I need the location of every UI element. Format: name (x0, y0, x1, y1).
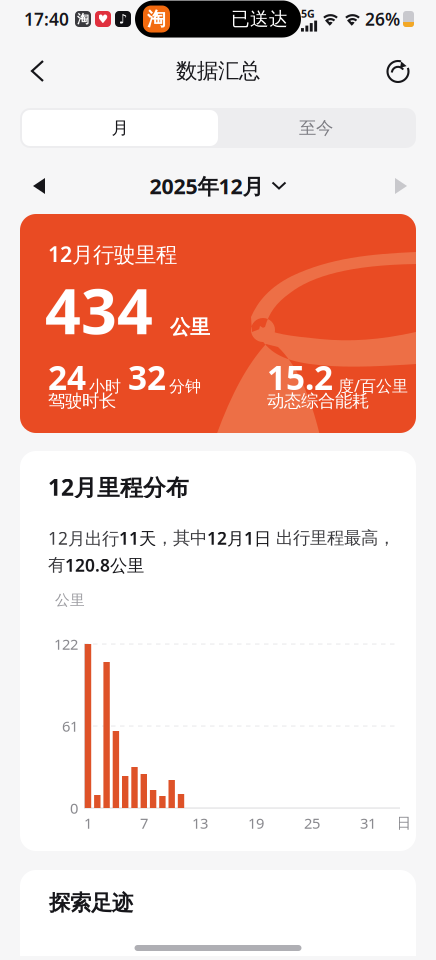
staticText: 24 (48, 355, 86, 399)
staticText: 月 (111, 117, 128, 139)
staticText: 出行里程最高， (271, 527, 395, 549)
button[interactable]: Back (0, 60, 45, 82)
staticText: 0 (70, 798, 78, 818)
staticText: 26% (365, 7, 400, 30)
staticText: 至今 (299, 117, 333, 139)
staticText: 122 (54, 634, 78, 654)
staticText: 动态综合能耗 (267, 390, 369, 412)
staticText: ，其中 (156, 527, 207, 549)
staticText: 淘 (147, 7, 166, 30)
button[interactable]: 月 (22, 110, 218, 146)
staticText: 已送达 (231, 7, 288, 30)
staticText: 11天 (119, 526, 156, 549)
staticText: 数据汇总 (176, 58, 260, 84)
staticText: 日 (396, 814, 411, 832)
staticText: 15.2 (267, 355, 333, 399)
staticText: 25 (304, 813, 320, 833)
staticText: 17:40 (24, 7, 69, 30)
staticText: 度/百公里 (338, 375, 408, 396)
staticText: 32 (128, 355, 166, 399)
staticText: 12月出行 (48, 526, 119, 549)
staticText: ♪ (118, 11, 127, 26)
staticText: 1 (84, 813, 92, 833)
staticText: 12月里程分布 (48, 472, 189, 502)
staticText: 2025年12月 (149, 172, 263, 200)
staticText: 有 (48, 554, 65, 576)
staticText: 驾驶时长 (48, 390, 116, 412)
staticText: 12月1日 (207, 526, 271, 549)
staticText: 公里 (55, 591, 85, 609)
staticText: 120.8公里 (65, 553, 144, 576)
button[interactable]: Refresh (386, 57, 436, 84)
staticText: 13 (192, 813, 208, 833)
staticText: 434 (45, 268, 153, 352)
staticText: 61 (62, 716, 78, 736)
button[interactable]: 至今 (218, 110, 414, 146)
button[interactable]: Next month (395, 173, 436, 189)
button[interactable]: 2025年12月 (149, 167, 286, 195)
staticText: 31 (360, 813, 376, 833)
staticText: 12月行驶里程 (48, 240, 177, 268)
staticText: ♥ (97, 12, 108, 26)
button[interactable]: Previous month (0, 173, 45, 189)
staticText: 淘 (77, 12, 89, 26)
staticText: 小时 (89, 376, 121, 396)
staticText: 分钟 (169, 376, 201, 396)
staticText: 19 (248, 813, 264, 833)
staticText: 7 (140, 813, 148, 833)
staticText: 探索足迹 (49, 890, 133, 916)
staticText: 5G (301, 6, 315, 21)
staticText: 公里 (170, 315, 210, 339)
